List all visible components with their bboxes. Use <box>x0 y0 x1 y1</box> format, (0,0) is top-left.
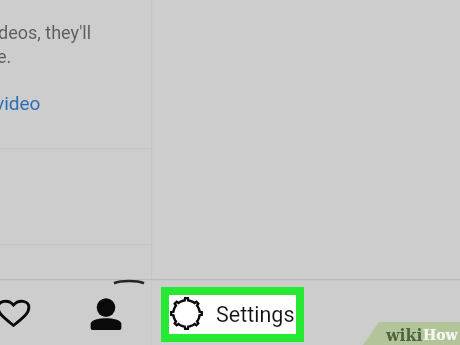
button[interactable]: Profile <box>84 292 128 336</box>
staticText: wiki <box>386 325 423 345</box>
staticText: Settings <box>216 302 295 327</box>
staticText: deos, they'll <box>0 22 92 43</box>
staticText: video <box>0 92 41 114</box>
staticText: e. <box>0 46 12 67</box>
button[interactable]: Settings <box>169 295 296 334</box>
staticText: How <box>423 325 458 343</box>
button[interactable]: Likes <box>0 289 35 333</box>
